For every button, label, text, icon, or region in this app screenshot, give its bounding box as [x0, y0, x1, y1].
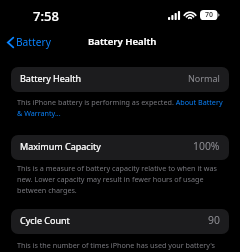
staticText: This is the number of times iPhone has u…	[17, 240, 215, 250]
staticText: Battery	[16, 35, 51, 49]
staticText: 70	[205, 10, 214, 20]
staticText: 90	[208, 213, 220, 227]
staticText: 100%	[193, 139, 220, 153]
staticText: 7:58	[33, 7, 59, 25]
button[interactable]: Battery Health	[11, 67, 229, 92]
button[interactable]: Back to Battery	[3, 33, 55, 51]
staticText: Cycle Count	[20, 214, 70, 226]
button[interactable]: Maximum Capacity	[11, 135, 229, 160]
staticText: This iPhone battery is performing as exp…	[17, 97, 225, 118]
staticText: Maximum Capacity	[20, 140, 101, 152]
staticText: Battery Health	[20, 72, 82, 84]
staticText: Battery Health	[88, 35, 157, 48]
staticText: This is a measure of battery capacity re…	[17, 163, 225, 195]
staticText: Normal	[188, 72, 220, 84]
button[interactable]: Cycle Count	[11, 209, 229, 234]
